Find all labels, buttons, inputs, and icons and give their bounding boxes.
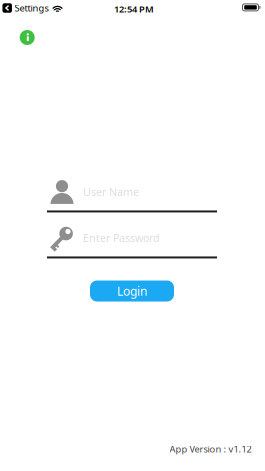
staticText: 12:54 PM	[114, 3, 154, 15]
staticText: Settings	[14, 2, 48, 14]
staticText: Login	[117, 283, 147, 299]
staticText: Enter Password	[83, 231, 160, 245]
button[interactable]: Settings	[14, 2, 48, 14]
button[interactable]: Information	[20, 30, 35, 45]
staticText: App Version : v1.12	[169, 443, 251, 455]
button[interactable]: Login	[90, 280, 174, 301]
button[interactable]: Enter Password	[47, 226, 217, 258]
staticText: User Name	[83, 185, 139, 199]
button[interactable]: User Name	[47, 180, 217, 212]
